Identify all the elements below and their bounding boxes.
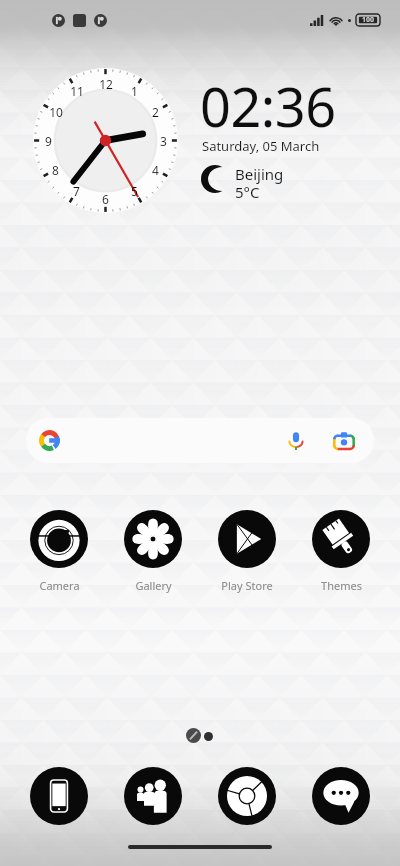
staticText: Themes — [321, 578, 362, 593]
button[interactable]: Voice search — [286, 431, 306, 451]
button[interactable]: Play Store — [206, 510, 288, 593]
staticText: 10 — [49, 104, 63, 120]
staticText: 9 — [45, 133, 52, 149]
staticText: 2 — [152, 104, 159, 120]
staticText: Camera — [39, 578, 80, 593]
button[interactable]: Google Lens — [333, 430, 355, 452]
staticText: Beijing — [235, 164, 284, 184]
staticText: Saturday, 05 March — [202, 137, 320, 155]
staticText: 100 — [362, 15, 375, 25]
staticText: 11 — [70, 83, 84, 99]
staticText: 02:36 — [200, 69, 336, 143]
staticText: 4 — [152, 162, 159, 178]
button[interactable]: Contacts — [112, 767, 194, 825]
staticText: 12 — [99, 76, 113, 92]
button[interactable]: Camera — [18, 510, 100, 593]
button[interactable]: Phone — [18, 767, 100, 825]
staticText: 3 — [160, 133, 167, 149]
button[interactable]: Messages — [300, 767, 382, 825]
button[interactable]: Voice search — [26, 418, 374, 463]
staticText: 7 — [73, 183, 80, 199]
button[interactable]: Chrome — [206, 767, 288, 825]
button[interactable]: Home page — [186, 728, 201, 743]
staticText: 5 — [131, 183, 138, 199]
button[interactable]: Themes — [300, 510, 382, 593]
staticText: 8 — [52, 162, 59, 178]
button[interactable]: Gallery — [112, 510, 194, 593]
staticText: 1 — [131, 83, 138, 99]
staticText: 6 — [102, 191, 109, 207]
staticText: Play Store — [221, 578, 273, 593]
staticText: 5°C — [235, 182, 260, 202]
staticText: Gallery — [135, 578, 172, 593]
button[interactable]: Page 2 — [204, 732, 213, 741]
